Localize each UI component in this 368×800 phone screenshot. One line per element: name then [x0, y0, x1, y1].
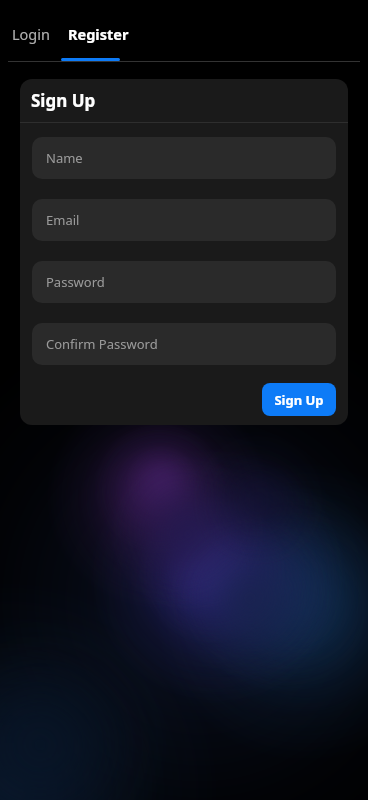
- staticText: Password: [46, 273, 105, 291]
- button[interactable]: Name: [32, 137, 336, 179]
- staticText: Email: [46, 211, 80, 229]
- staticText: Name: [46, 149, 83, 167]
- button[interactable]: Password: [32, 261, 336, 303]
- button[interactable]: Email: [32, 199, 336, 241]
- button[interactable]: Confirm Password: [32, 323, 336, 365]
- staticText: Sign Up: [274, 391, 324, 409]
- button[interactable]: Register: [64, 22, 133, 46]
- staticText: Confirm Password: [46, 335, 158, 353]
- staticText: Login: [12, 24, 50, 44]
- button[interactable]: Login: [8, 22, 54, 46]
- staticText: Sign Up: [31, 89, 96, 112]
- button[interactable]: Sign Up: [262, 383, 336, 416]
- staticText: Register: [68, 24, 129, 44]
